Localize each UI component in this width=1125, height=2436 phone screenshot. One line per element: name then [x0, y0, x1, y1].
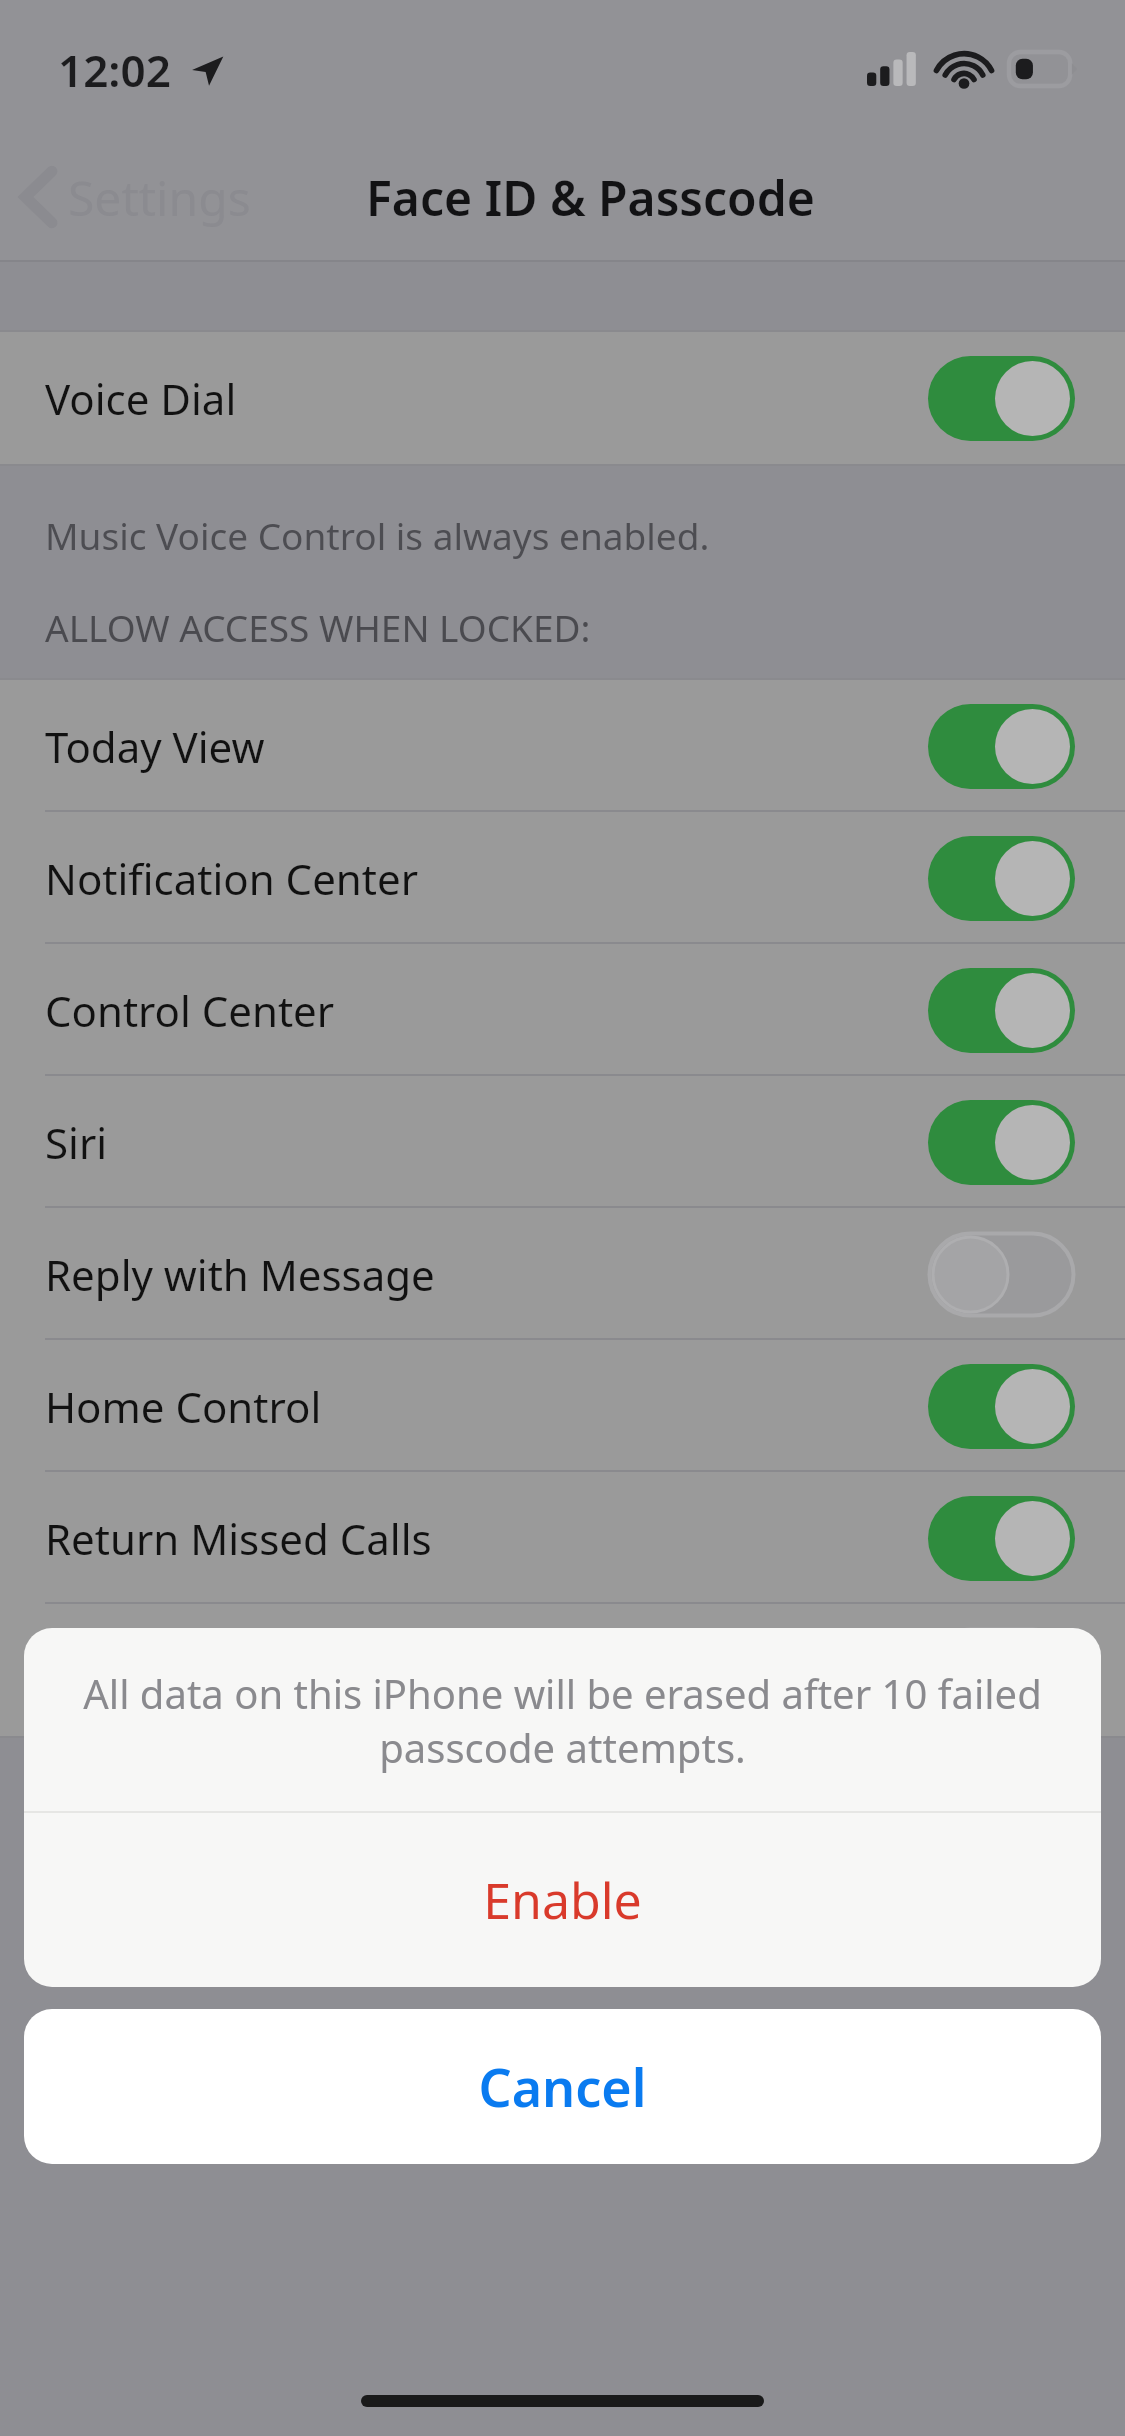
staticText: Face ID & Passcode: [366, 165, 815, 230]
button[interactable]: Control Center: [0, 944, 1125, 1076]
staticText: Control Center: [45, 982, 928, 1039]
button[interactable]: Toggle on: [928, 836, 1075, 921]
staticText: Cancel: [24, 2051, 1101, 2122]
button[interactable]: Toggle on: [928, 356, 1075, 441]
staticText: Siri: [45, 1114, 928, 1171]
staticText: USB Accessories: [45, 1642, 928, 1699]
staticText: ALLOW ACCESS WHEN LOCKED:: [45, 602, 591, 652]
button[interactable]: Siri: [0, 1076, 1125, 1208]
staticText: Home Control: [45, 1378, 928, 1435]
button[interactable]: Reply with Message: [0, 1208, 1125, 1340]
button[interactable]: USB Accessories: [0, 1604, 1125, 1736]
button[interactable]: Enable: [24, 1813, 1101, 1987]
staticText: 12:02: [58, 40, 171, 100]
button[interactable]: Today View: [0, 680, 1125, 812]
button[interactable]: Toggle on: [928, 1364, 1075, 1449]
staticText: All data on this iPhone will be erased a…: [66, 1666, 1059, 1774]
staticText: Today View: [45, 718, 928, 775]
staticText: Reply with Message: [45, 1246, 928, 1303]
button[interactable]: Cancel: [24, 2009, 1101, 2164]
staticText: Unlock iPhone to allow USB accessories t…: [45, 1776, 1061, 1826]
button[interactable]: Return Missed Calls: [0, 1472, 1125, 1604]
staticText: Return Missed Calls: [45, 1510, 928, 1567]
button[interactable]: Voice Dial: [0, 332, 1125, 464]
button[interactable]: Notification Center: [0, 812, 1125, 944]
button[interactable]: Toggle off: [928, 1232, 1075, 1317]
staticText: Voice Dial: [45, 370, 928, 427]
button[interactable]: Toggle off: [928, 1628, 1075, 1713]
button[interactable]: Toggle on: [928, 1100, 1075, 1185]
button[interactable]: Toggle on: [928, 704, 1075, 789]
staticText: Enable: [24, 1866, 1101, 1934]
button[interactable]: Toggle on: [928, 1496, 1075, 1581]
staticText: Notification Center: [45, 850, 928, 907]
button[interactable]: Home Control: [0, 1340, 1125, 1472]
staticText: Music Voice Control is always enabled.: [45, 510, 710, 560]
button[interactable]: Toggle on: [928, 968, 1075, 1053]
